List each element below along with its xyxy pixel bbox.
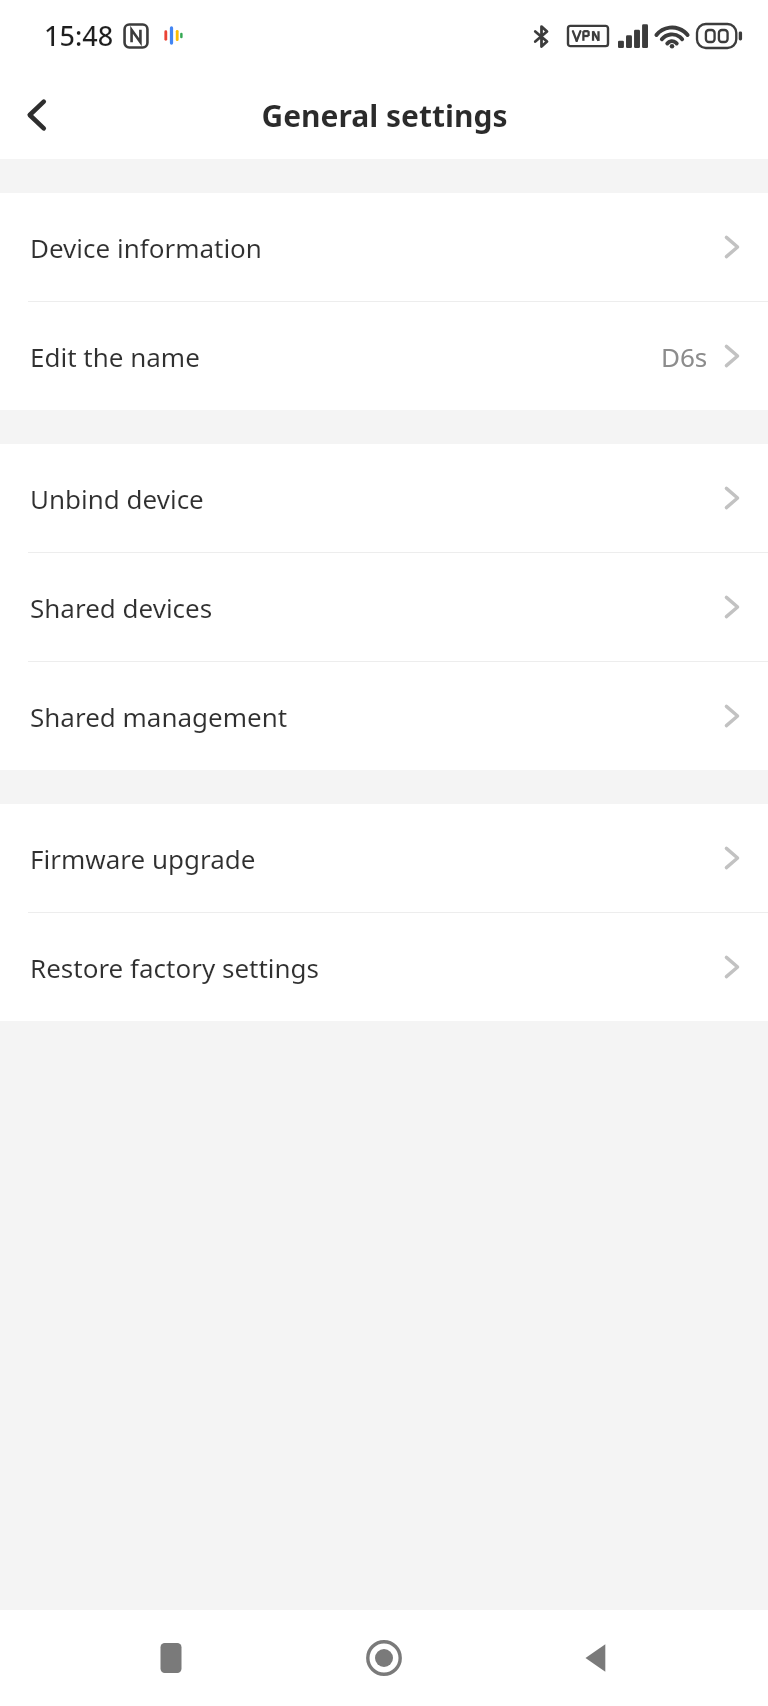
button[interactable]: Recent apps [129,1616,213,1700]
staticText: D6s [661,339,708,374]
staticText: Unbind device [30,481,204,516]
button[interactable]: Edit the name [0,302,768,410]
staticText: General settings [261,95,508,136]
button[interactable]: Back [6,83,70,147]
staticText: Firmware upgrade [30,841,256,876]
button[interactable]: Home [342,1616,426,1700]
button[interactable]: Back [555,1616,639,1700]
staticText: 15:48 [44,17,114,54]
button[interactable]: Shared management [0,662,768,770]
staticText: Restore factory settings [30,950,320,985]
staticText: Shared devices [30,590,213,625]
button[interactable]: Shared devices [0,553,768,661]
button[interactable]: Restore factory settings [0,913,768,1021]
button[interactable]: Firmware upgrade [0,804,768,912]
staticText: Device information [30,230,262,265]
button[interactable]: Device information [0,193,768,301]
button[interactable]: Unbind device [0,444,768,552]
staticText: Shared management [30,699,288,734]
staticText: Edit the name [30,339,200,374]
